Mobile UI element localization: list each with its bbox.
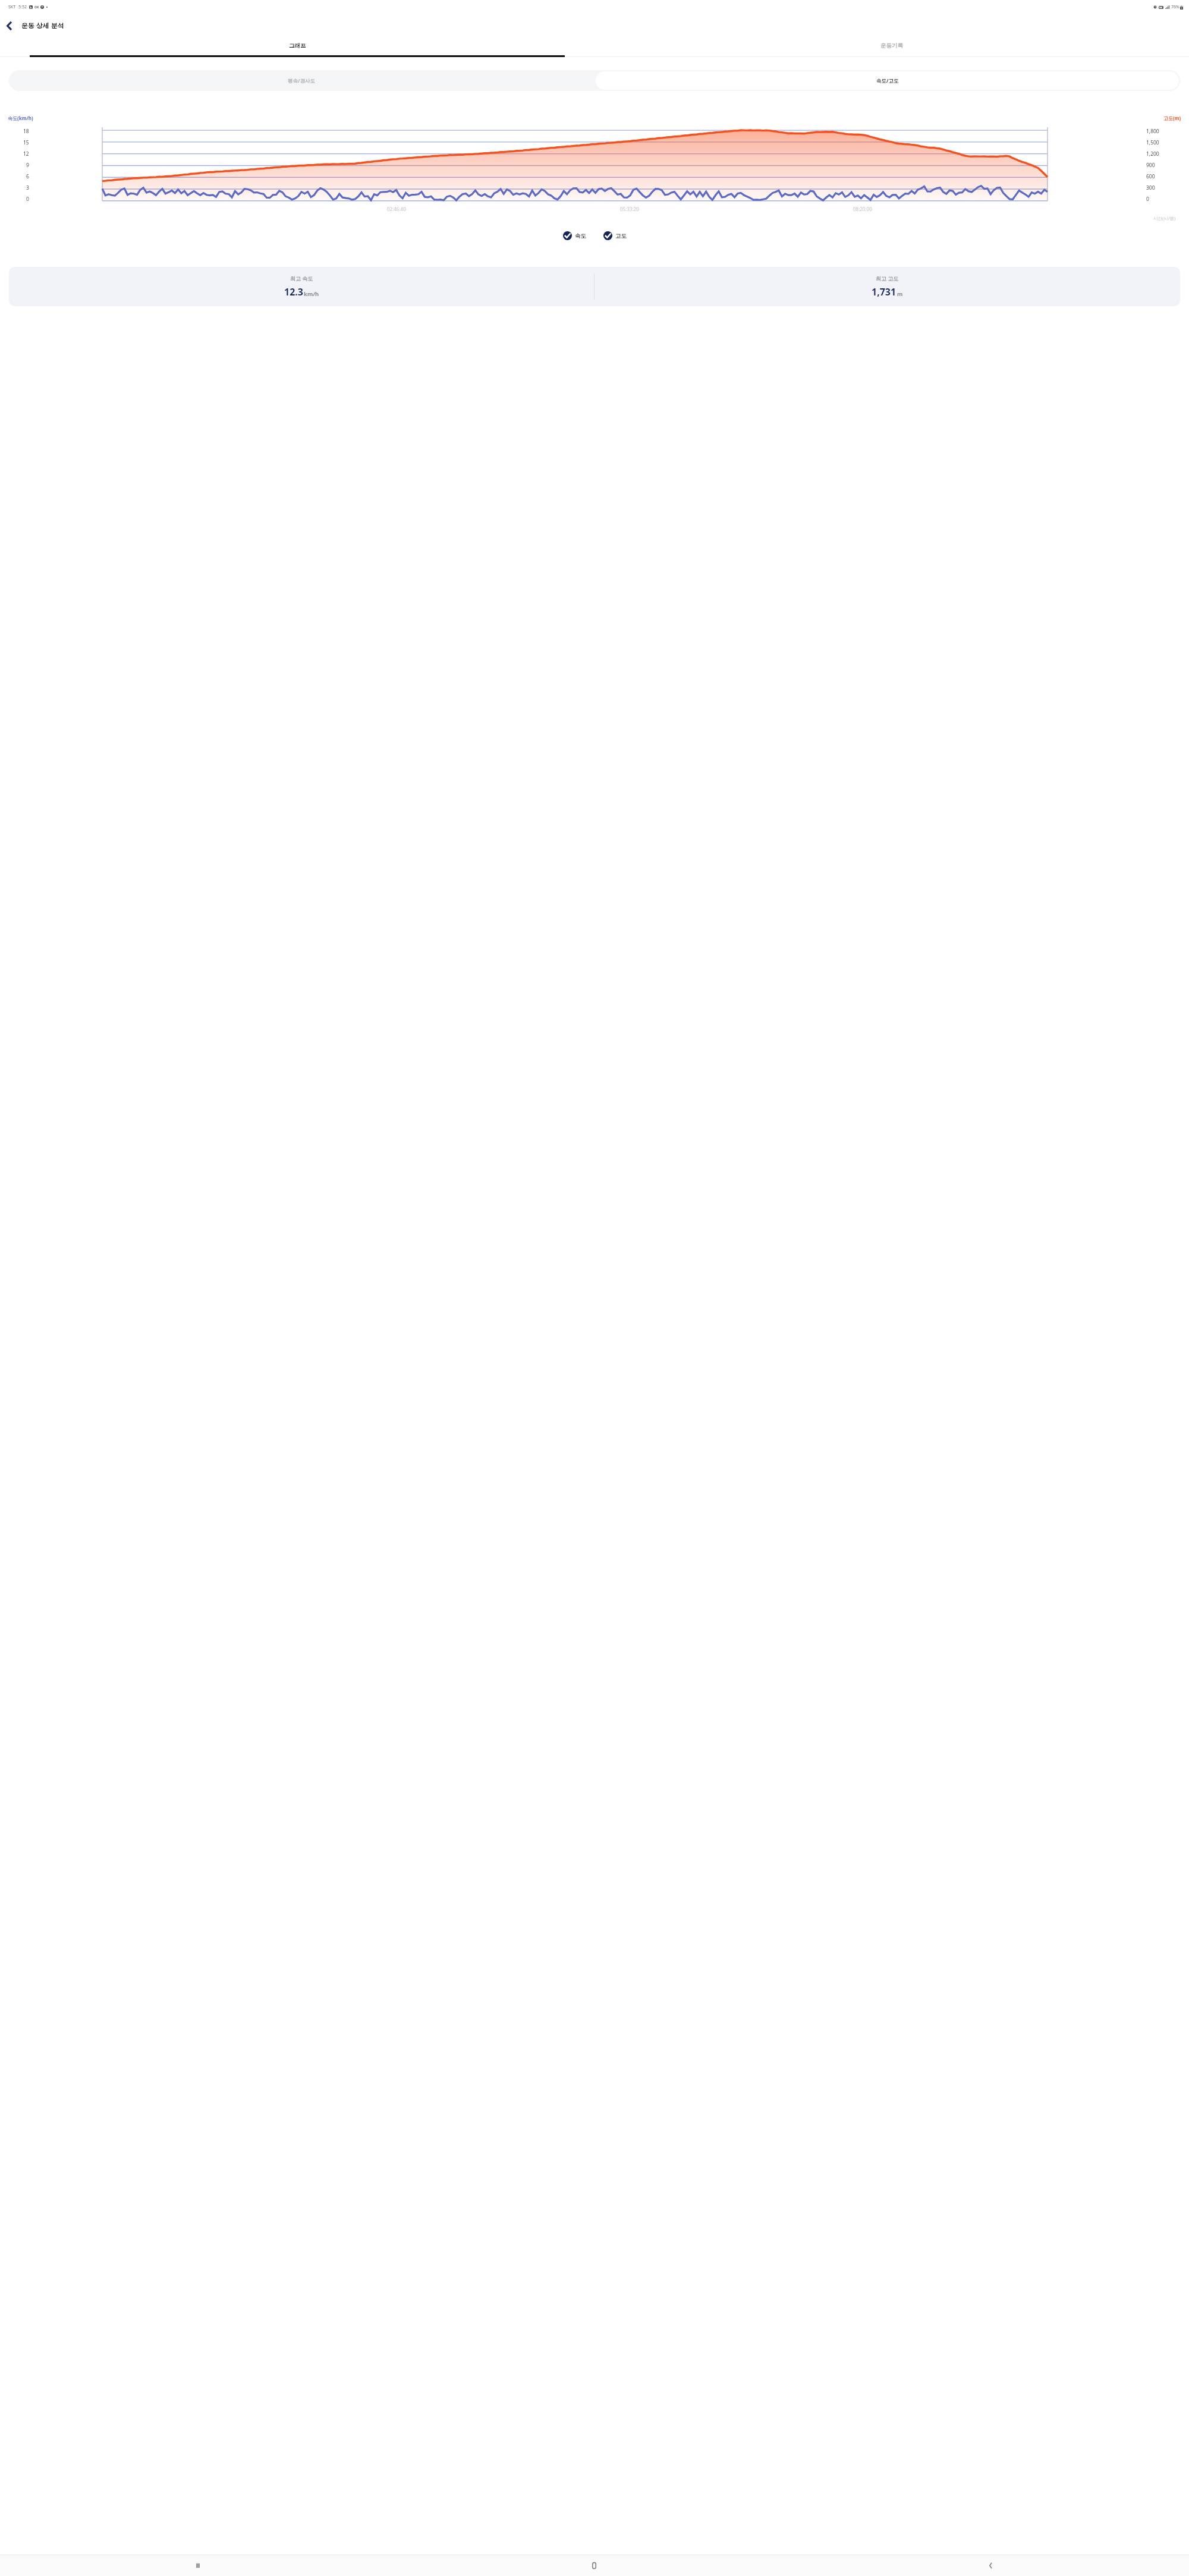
button[interactable]: 평속/경사도 <box>9 70 594 91</box>
button[interactable]: 최고 고도 <box>594 267 1180 306</box>
staticText: 5:52 <box>18 4 27 10</box>
button[interactable]: Back <box>792 2555 1189 2576</box>
staticText: 고도 <box>615 232 627 240</box>
staticText: 최고 고도 <box>876 275 899 282</box>
button[interactable]: 속도 <box>561 229 588 242</box>
staticText: km/h <box>304 290 319 298</box>
staticText: 300 <box>1146 184 1155 191</box>
staticText: 시간(시/분) <box>1153 215 1176 221</box>
staticText: 0 <box>1146 196 1149 203</box>
button[interactable]: 최고 속도 <box>9 267 594 306</box>
staticText: 15 <box>23 139 29 146</box>
staticText: 속도 <box>575 232 586 240</box>
staticText: 3 <box>26 184 29 191</box>
staticText: 12 <box>23 150 29 158</box>
staticText: 6 <box>26 173 29 180</box>
staticText: 속도(km/h) <box>8 115 33 121</box>
staticText: 고도(m) <box>1163 115 1181 121</box>
staticText: 최고 속도 <box>290 275 313 282</box>
button[interactable]: 고도 <box>602 229 628 242</box>
staticText: 1,800 <box>1146 128 1159 135</box>
staticText: 운동 상세 분석 <box>21 21 64 30</box>
button[interactable]: Home <box>396 2555 792 2576</box>
button[interactable]: Recents <box>0 2555 396 2576</box>
staticText: 9 <box>26 162 29 169</box>
staticText: m <box>897 290 903 298</box>
staticText: 1,731 <box>872 285 897 298</box>
button[interactable]: 운동기록 <box>594 36 1189 55</box>
button[interactable]: 그래프 <box>0 36 594 55</box>
button[interactable]: Back <box>2 18 16 33</box>
staticText: 속도/고도 <box>876 77 899 84</box>
staticText: 05:33:20 <box>620 206 639 212</box>
staticText: 08:20:00 <box>853 206 872 212</box>
staticText: 그래프 <box>289 42 306 49</box>
staticText: 1,500 <box>1146 139 1159 146</box>
staticText: 평속/경사도 <box>288 77 316 84</box>
staticText: 900 <box>1146 162 1155 169</box>
staticText: 600 <box>1146 173 1155 180</box>
staticText: 1,200 <box>1146 150 1159 158</box>
staticText: 5G <box>1159 6 1163 9</box>
staticText: 18 <box>23 128 29 135</box>
staticText: 12.3 <box>284 285 303 298</box>
staticText: 0 <box>26 196 29 203</box>
staticText: 76% <box>1171 4 1179 10</box>
staticText: OK <box>34 5 39 10</box>
staticText: 운동기록 <box>880 42 903 49</box>
staticText: T <box>42 6 43 8</box>
button[interactable]: 속도/고도 <box>596 71 1179 90</box>
staticText: 02:46:40 <box>387 206 406 212</box>
staticText: SKT <box>8 4 16 10</box>
